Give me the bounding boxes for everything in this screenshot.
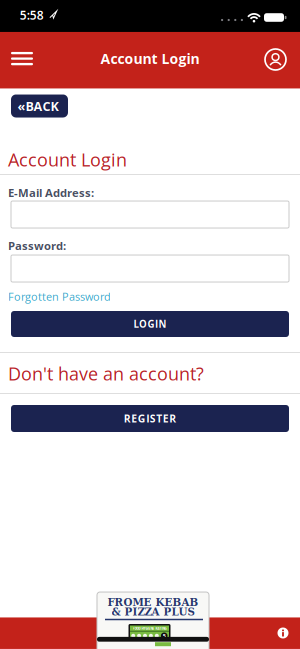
staticText: Account Login xyxy=(8,147,127,172)
staticText: & PIZZA PLUS xyxy=(111,605,194,618)
staticText: Don't have an account? xyxy=(8,361,204,386)
staticText: Forgotten Password xyxy=(8,289,111,304)
button[interactable]: REGISTER xyxy=(11,405,289,432)
staticText: 5 xyxy=(163,632,166,640)
button[interactable]: «BACK xyxy=(11,94,68,117)
button[interactable]: Info xyxy=(277,627,289,639)
button[interactable]: Menu xyxy=(7,44,37,74)
staticText: FROME KEBAB xyxy=(107,595,198,609)
staticText: LOGIN xyxy=(133,317,166,331)
staticText: REGISTER xyxy=(124,411,176,426)
staticText: E-Mail Address: xyxy=(8,185,94,200)
button[interactable]: Account xyxy=(261,45,289,73)
staticText: FOOD HYGIENE RATING xyxy=(132,627,166,631)
button[interactable]: Forgotten Password xyxy=(8,289,111,304)
button[interactable]: LOGIN xyxy=(11,311,289,337)
staticText: Password: xyxy=(8,238,66,253)
staticText: «BACK xyxy=(17,97,58,115)
staticText: Account Login xyxy=(100,49,199,68)
staticText: 5:58 xyxy=(20,7,44,23)
